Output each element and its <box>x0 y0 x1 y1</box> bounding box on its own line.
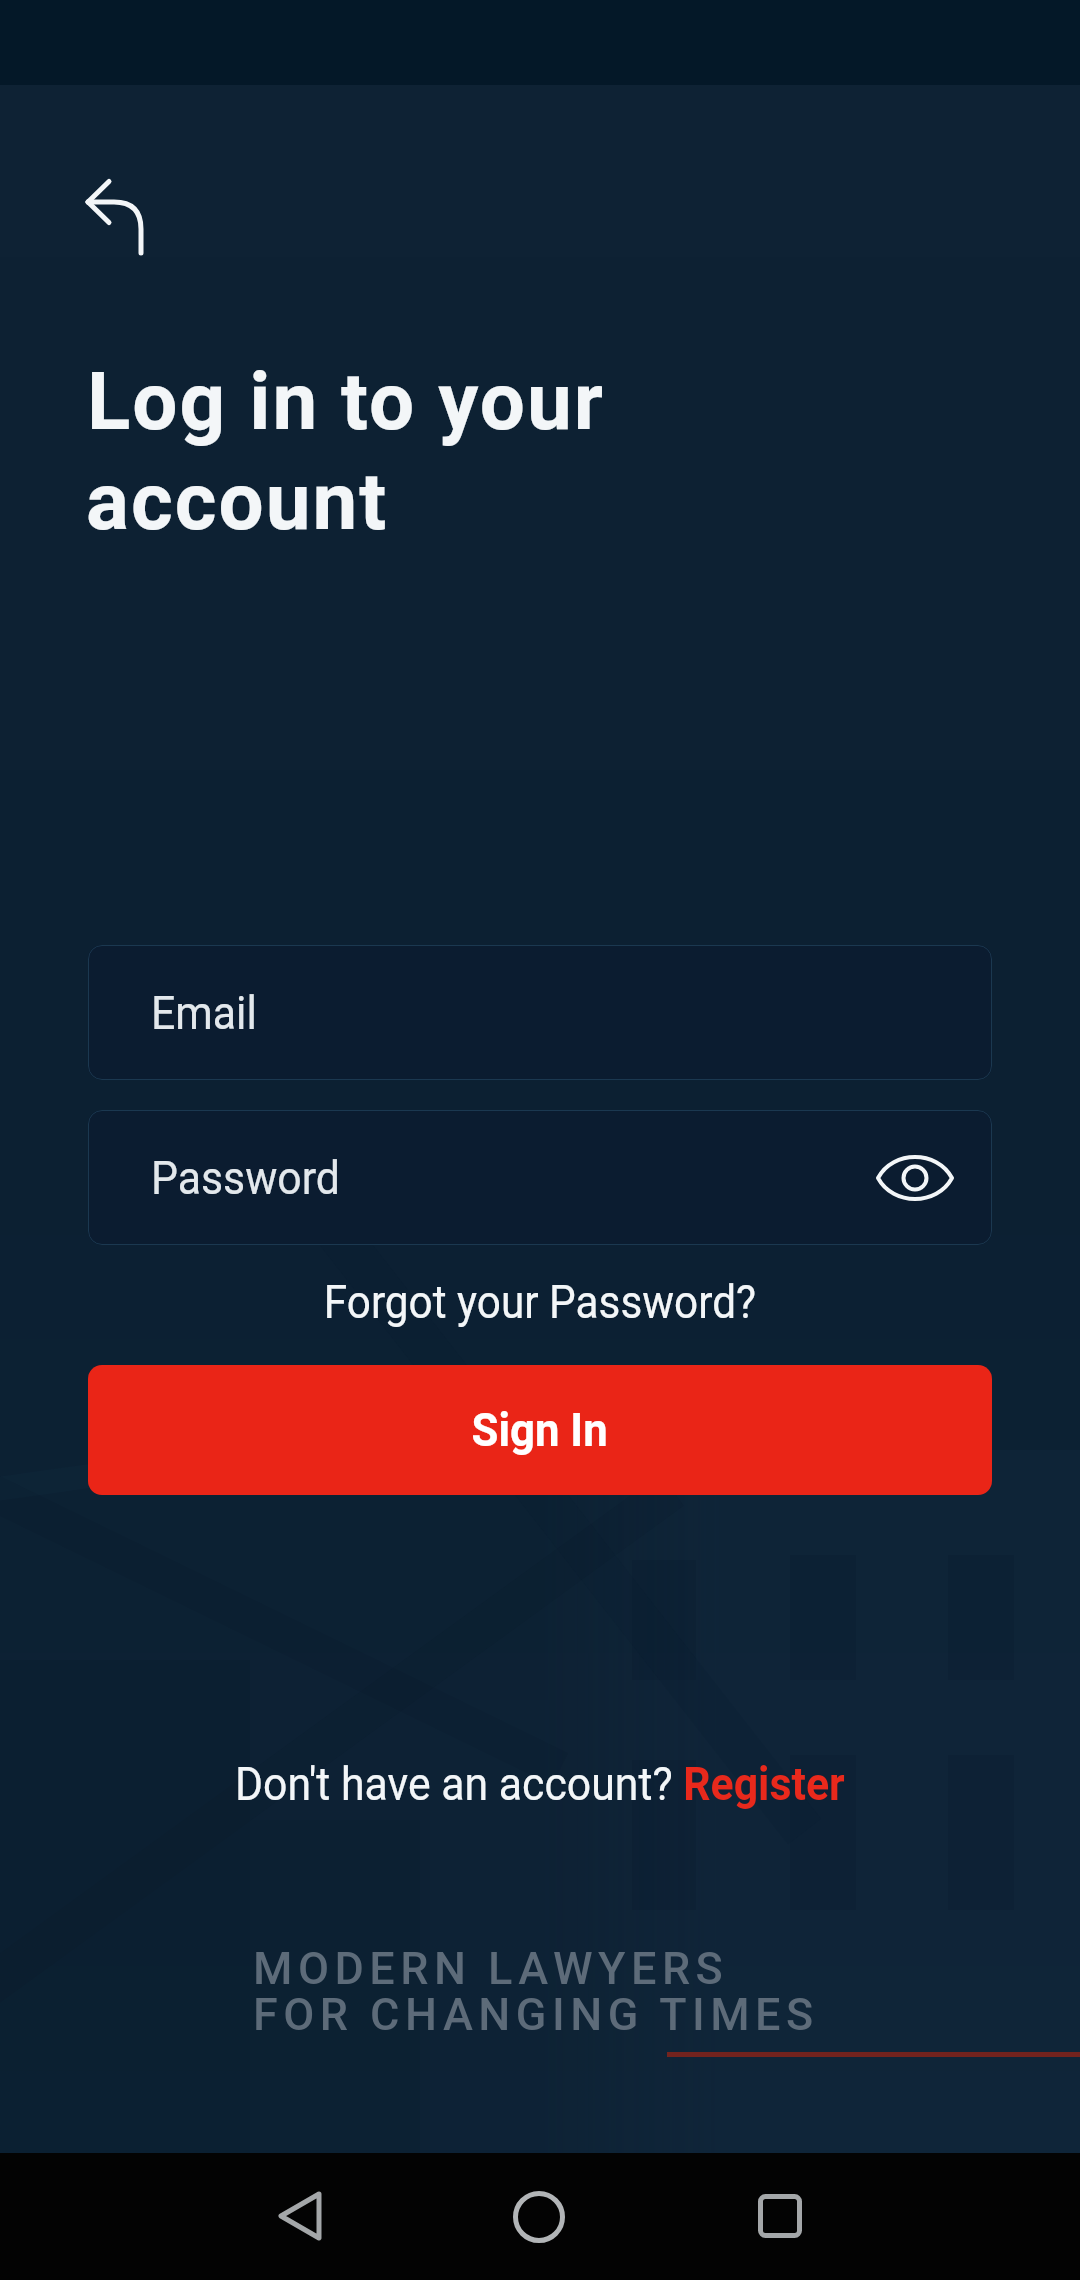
staticText: MODERN LAWYERS <box>253 1942 729 1995</box>
button[interactable]: Don't have an account? Register <box>212 1757 868 1811</box>
button[interactable]: Forgot your Password? <box>305 1275 775 1329</box>
staticText: Forgot your Password? <box>324 1275 756 1329</box>
staticText: Log in to your account <box>86 355 604 549</box>
staticText: Email <box>151 986 257 1040</box>
button[interactable] <box>748 2184 812 2248</box>
button[interactable] <box>58 162 170 274</box>
button[interactable] <box>507 2185 571 2249</box>
button[interactable]: Email <box>88 945 992 1080</box>
staticText: FOR CHANGING TIMES <box>253 1988 819 2041</box>
staticText: Sign In <box>472 1403 608 1457</box>
button[interactable]: Password <box>88 1110 992 1245</box>
staticText: Don't have an account? Register <box>235 1757 845 1811</box>
staticText: Password <box>151 1151 341 1205</box>
button[interactable] <box>268 2184 332 2248</box>
button[interactable]: Sign In <box>88 1365 992 1495</box>
